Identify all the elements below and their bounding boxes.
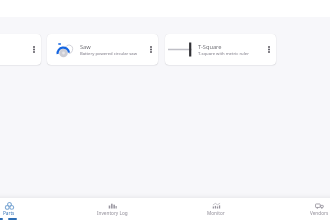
staticText: T-Square [198,43,222,51]
button[interactable]: Inventory Log [86,198,138,220]
button[interactable]: Saw [47,34,158,65]
staticText: Battery powered circular saw [80,51,137,57]
button[interactable]: T-Square [165,34,276,65]
button[interactable]: More options [144,34,158,65]
button[interactable]: More options [262,34,276,65]
button[interactable]: Monitor [190,198,242,220]
button[interactable]: Vendors [293,198,330,220]
staticText: Saw [80,43,91,51]
button[interactable]: More options [27,34,41,65]
staticText: T-square with metric ruler [198,51,249,57]
staticText: Vendors [310,210,329,216]
staticText: Parts [3,210,15,216]
staticText: Monitor [207,210,225,216]
staticText: Inventory Log [97,210,128,216]
button[interactable]: Parts [0,198,35,220]
button[interactable]: Drill [0,34,41,65]
